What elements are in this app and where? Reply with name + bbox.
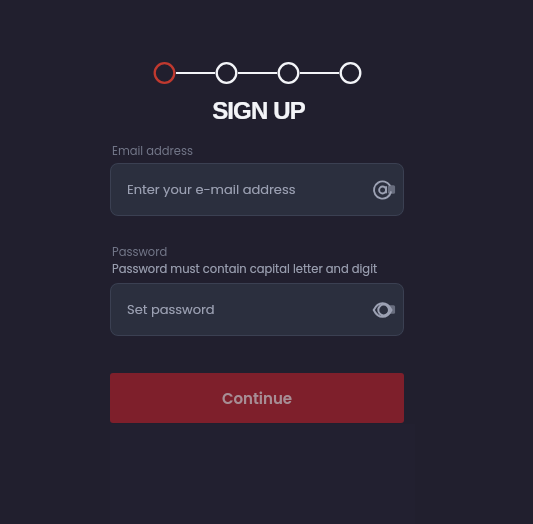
staticText: Set password — [127, 300, 215, 318]
staticText: Password must contain capital letter and… — [112, 261, 378, 277]
staticText: Email address — [112, 143, 193, 159]
staticText: SIGN UP — [212, 97, 305, 124]
staticText: Enter your e-mail address — [127, 180, 296, 198]
button[interactable]: Set password — [110, 283, 404, 336]
staticText: Continue — [222, 388, 293, 409]
other: Email — [372, 177, 398, 203]
staticText: Password — [112, 244, 168, 260]
button[interactable]: Continue — [110, 373, 404, 423]
button[interactable]: Enter your e-mail address — [110, 163, 404, 216]
other: Show password — [372, 297, 398, 323]
